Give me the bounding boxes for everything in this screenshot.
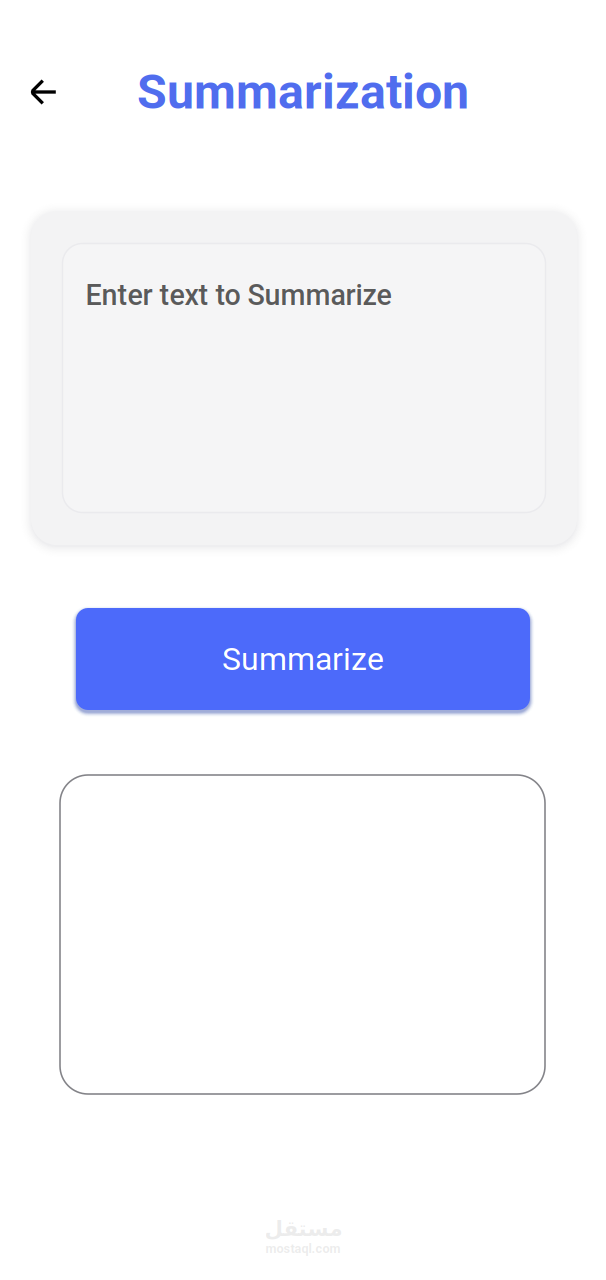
button[interactable]: Summarize <box>76 608 530 710</box>
staticText: مستقل <box>264 1216 342 1241</box>
staticText: Summarization <box>137 64 469 120</box>
staticText: Summarize <box>222 640 384 678</box>
button[interactable]: Enter text to Summarize <box>62 243 545 512</box>
staticText: mostaql.com <box>265 1241 340 1256</box>
staticText: Enter text to Summarize <box>85 278 391 312</box>
button[interactable]: Back <box>15 63 72 121</box>
